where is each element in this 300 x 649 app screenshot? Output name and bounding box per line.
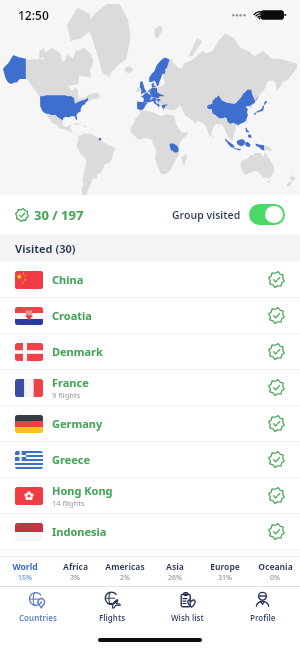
button[interactable]: Indonesia (0, 514, 300, 549)
button[interactable]: Croatia (0, 298, 300, 333)
button[interactable]: Asia (150, 561, 200, 583)
staticText: World (12, 561, 38, 573)
staticText: 0% (270, 573, 280, 583)
staticText: Profile (250, 612, 276, 623)
staticText: France (52, 375, 89, 390)
staticText: Asia (166, 561, 184, 573)
staticText: Africa (63, 561, 88, 573)
staticText: Group visited (172, 208, 241, 222)
staticText: Countries (19, 612, 57, 623)
button[interactable]: France (0, 370, 300, 405)
staticText: Visited (30) (15, 241, 76, 256)
button[interactable]: Germany (0, 406, 300, 441)
staticText: Germany (52, 416, 103, 431)
staticText: Europe (210, 561, 240, 573)
button[interactable]: Oceania (250, 561, 300, 583)
button[interactable]: Europe (200, 561, 250, 583)
staticText: Hong Kong (52, 483, 113, 498)
staticText: 12:50 (18, 7, 49, 23)
button[interactable]: Wish list (150, 591, 225, 623)
staticText: Oceania (258, 561, 293, 573)
staticText: Indonesia (52, 524, 107, 539)
staticText: 30 / 197 (34, 206, 84, 224)
button[interactable]: Countries (0, 591, 75, 623)
staticText: 14 flights (52, 498, 85, 508)
staticText: Wish list (171, 612, 204, 623)
button[interactable]: Profile (225, 591, 300, 623)
staticText: Greece (52, 452, 91, 467)
staticText: 9 flights (52, 390, 81, 400)
button[interactable]: Hong Kong (0, 478, 300, 513)
button[interactable]: Denmark (0, 334, 300, 369)
staticText: Flights (99, 612, 126, 623)
staticText: 15% (18, 573, 32, 583)
staticText: 2% (120, 573, 130, 583)
staticText: 31% (218, 573, 232, 583)
button[interactable]: Americas (100, 561, 150, 583)
staticText: Denmark (52, 344, 103, 359)
button[interactable]: Greece (0, 442, 300, 477)
staticText: 26% (168, 573, 182, 583)
button[interactable]: Africa (50, 561, 100, 583)
button[interactable]: China (0, 262, 300, 297)
staticText: China (52, 272, 84, 287)
button[interactable]: Group visited (172, 204, 285, 225)
staticText: Croatia (52, 308, 92, 323)
button[interactable]: World (0, 561, 50, 583)
staticText: Americas (105, 561, 145, 573)
button[interactable]: Flights (75, 591, 150, 623)
staticText: 3% (70, 573, 80, 583)
